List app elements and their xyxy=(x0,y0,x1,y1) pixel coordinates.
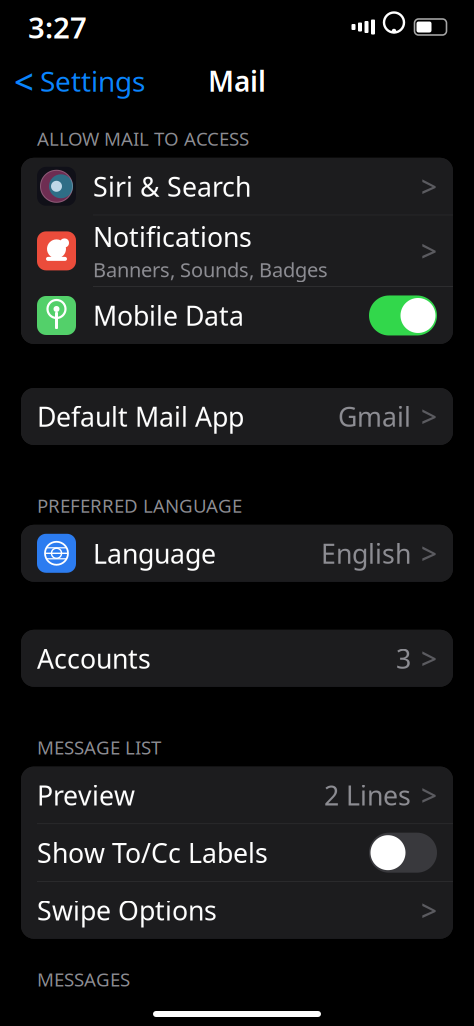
button[interactable]: Accounts xyxy=(21,630,453,687)
staticText: 2 Lines xyxy=(324,777,411,813)
staticText: Mail xyxy=(208,62,266,100)
staticText: > xyxy=(421,168,437,205)
button[interactable]: Siri & Search xyxy=(21,158,453,215)
staticText: > xyxy=(421,535,437,572)
staticText: > xyxy=(421,776,437,814)
button[interactable]: Default Mail App xyxy=(21,388,453,445)
staticText: 3 xyxy=(396,641,411,676)
staticText: > xyxy=(421,398,437,435)
staticText: Default Mail App xyxy=(37,399,244,434)
staticText: < xyxy=(14,58,34,104)
staticText: MESSAGE LIST xyxy=(37,735,161,760)
button[interactable]: Preview xyxy=(21,767,453,824)
staticText: PREFERRED LANGUAGE xyxy=(37,493,242,518)
staticText: Mobile Data xyxy=(93,298,244,333)
staticText: Notifications xyxy=(93,219,252,254)
staticText: ALLOW MAIL TO ACCESS xyxy=(37,126,249,151)
staticText: Settings xyxy=(40,62,145,100)
staticText: Banners, Sounds, Badges xyxy=(93,256,328,283)
button[interactable]: < xyxy=(0,58,155,104)
staticText: Swipe Options xyxy=(37,893,217,928)
staticText: > xyxy=(421,892,437,929)
staticText: 3:27 xyxy=(28,7,87,46)
button[interactable]: Mobile Data xyxy=(21,287,453,344)
button[interactable]: Swipe Options xyxy=(21,882,453,939)
staticText: Language xyxy=(93,536,216,571)
staticText: Show To/Cc Labels xyxy=(37,835,268,870)
staticText: > xyxy=(421,640,437,677)
button[interactable]: Notifications xyxy=(21,215,453,286)
staticText: English xyxy=(321,536,411,571)
staticText: Preview xyxy=(37,777,135,813)
staticText: Siri & Search xyxy=(93,169,251,204)
button[interactable]: Language xyxy=(21,525,453,582)
button[interactable]: Show To/Cc Labels xyxy=(21,824,453,881)
staticText: > xyxy=(421,232,437,269)
staticText: Gmail xyxy=(338,399,411,434)
staticText: Accounts xyxy=(37,641,151,676)
staticText: MESSAGES xyxy=(37,967,130,992)
